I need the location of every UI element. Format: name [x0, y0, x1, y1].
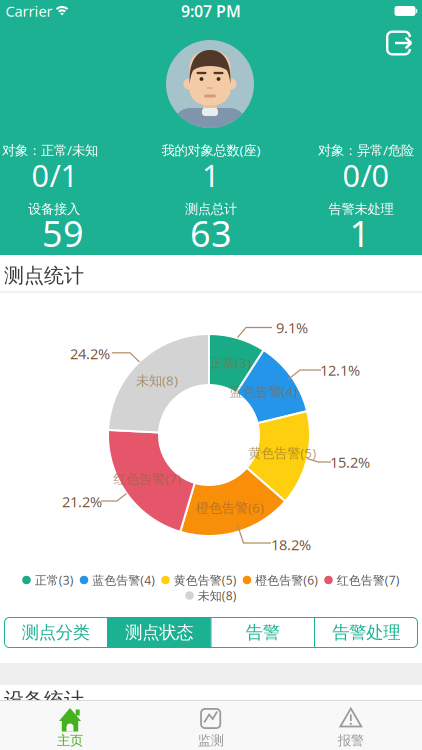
staticText: 对象：正常/未知: [2, 141, 98, 159]
staticText: 9.1%: [276, 318, 308, 337]
staticText: 蓝色告警(4): [92, 572, 155, 588]
staticText: 59: [42, 209, 84, 257]
staticText: Carrier: [5, 1, 52, 21]
staticText: 监测: [198, 732, 224, 749]
staticText: 正常(3): [209, 354, 251, 371]
button[interactable]: 主页: [0, 700, 141, 750]
staticText: 正常(3): [35, 572, 74, 588]
staticText: 测点状态: [125, 622, 193, 643]
staticText: 12.1%: [320, 360, 360, 380]
staticText: 测点总计: [185, 201, 237, 217]
staticText: 1: [349, 209, 370, 257]
button[interactable]: 报警: [281, 700, 422, 750]
staticText: 告警未处理: [328, 201, 393, 217]
button[interactable]: 测点状态: [108, 617, 211, 648]
staticText: 测点统计: [4, 263, 84, 288]
button[interactable]: 告警处理: [315, 617, 418, 648]
button[interactable]: 测点分类: [4, 617, 107, 648]
staticText: 红色告警(7): [337, 572, 400, 588]
button[interactable]: 监测: [141, 700, 281, 750]
staticText: 我的对象总数(座): [161, 141, 260, 159]
staticText: 黄色告警(5): [174, 572, 237, 588]
staticText: 告警处理: [332, 622, 400, 643]
staticText: 设备统计: [4, 688, 84, 712]
staticText: 9:07 PM: [181, 0, 241, 22]
staticText: 蓝色告警(4): [229, 382, 297, 400]
button[interactable]: 告警: [211, 617, 314, 648]
staticText: 橙色告警(6): [196, 499, 264, 516]
staticText: 0/0: [342, 155, 389, 195]
staticText: 未知(8): [198, 587, 237, 603]
staticText: 测点分类: [22, 622, 90, 643]
staticText: 21.2%: [62, 492, 102, 511]
button[interactable]: Log out: [380, 25, 416, 61]
staticText: 对象：异常/危险: [318, 141, 414, 159]
staticText: 63: [190, 209, 232, 257]
staticText: 设备接入: [28, 201, 80, 217]
staticText: 18.2%: [271, 535, 311, 554]
staticText: 主页: [57, 732, 83, 749]
staticText: 红色告警(7): [113, 470, 181, 487]
staticText: 未知(8): [136, 371, 178, 389]
staticText: 告警: [246, 622, 280, 643]
staticText: 报警: [338, 732, 364, 749]
staticText: 黄色告警(5): [248, 444, 316, 462]
staticText: 1: [202, 155, 220, 195]
staticText: 橙色告警(6): [255, 572, 318, 588]
staticText: 0/1: [31, 155, 78, 195]
staticText: 15.2%: [330, 452, 370, 472]
staticText: 24.2%: [70, 344, 110, 363]
